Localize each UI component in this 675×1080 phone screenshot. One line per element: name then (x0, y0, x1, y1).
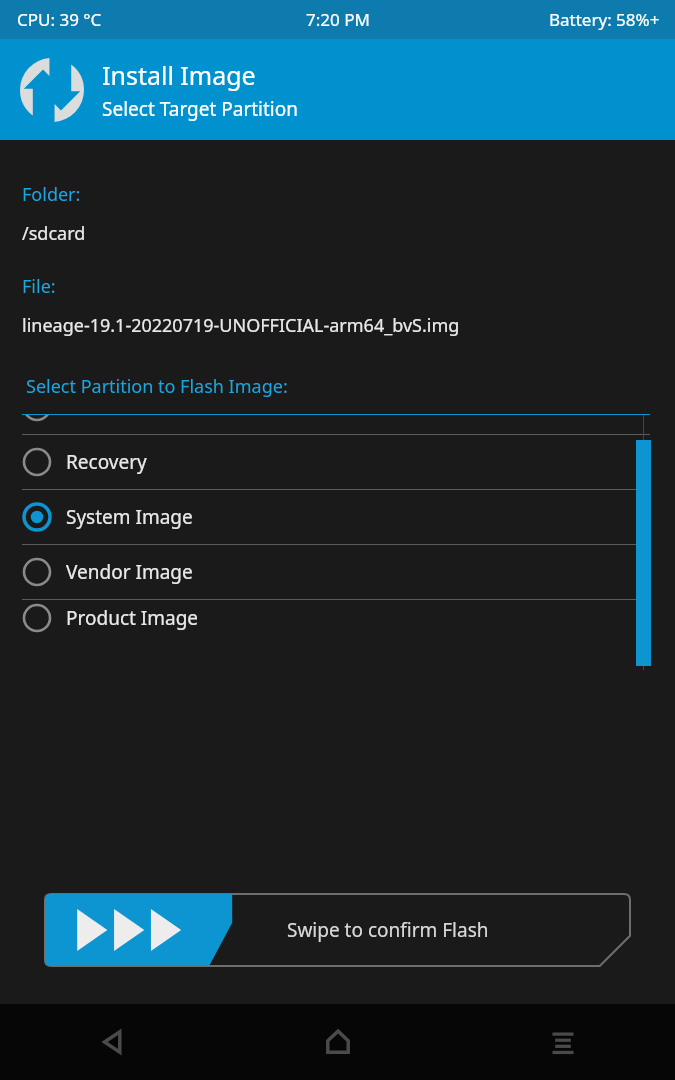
button[interactable]: System Image (0, 490, 675, 545)
staticText: Swipe to confirm Flash (287, 917, 489, 943)
button[interactable]: Swipe to confirm Flash (45, 894, 630, 966)
staticText: /sdcard (22, 221, 86, 246)
button[interactable]: Menu (450, 1004, 675, 1080)
staticText: 7:20 PM (306, 8, 370, 31)
staticText: lineage-19.1-20220719-UNOFFICIAL-arm64_b… (22, 313, 460, 338)
staticText: Battery: 58%+ (549, 8, 660, 31)
staticText: Product Image (66, 605, 199, 631)
staticText: File: (22, 274, 56, 299)
staticText: CPU: 39 °C (17, 8, 102, 31)
staticText: Recovery (66, 449, 147, 475)
staticText: Vendor Image (66, 559, 193, 585)
staticText: Folder: (22, 182, 81, 207)
button[interactable]: Back (0, 1004, 225, 1080)
staticText: Install Image (102, 58, 256, 92)
staticText: Select Target Partition (102, 96, 299, 122)
staticText: Select Partition to Flash Image: (26, 374, 288, 399)
button[interactable]: Boot (0, 415, 675, 435)
staticText: System Image (66, 504, 193, 530)
button[interactable]: Home (225, 1004, 450, 1080)
button[interactable]: Product Image (0, 600, 675, 635)
button[interactable]: Vendor Image (0, 545, 675, 600)
button[interactable]: Recovery (0, 435, 675, 490)
